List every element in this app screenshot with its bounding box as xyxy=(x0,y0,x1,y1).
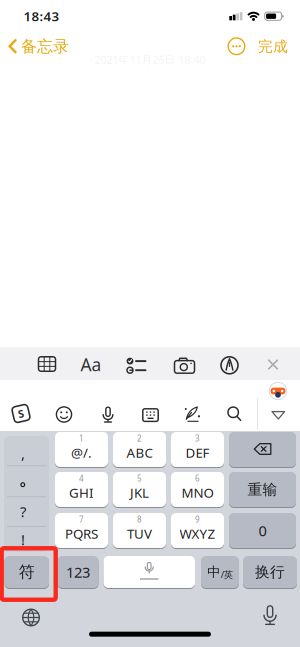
staticText: WXYZ xyxy=(179,525,215,542)
staticText: ! xyxy=(21,530,25,549)
button[interactable]: 听写 xyxy=(256,602,284,630)
staticText: 换行 xyxy=(255,563,285,581)
staticText: GHI xyxy=(69,484,94,501)
staticText: @/. xyxy=(71,444,92,461)
button[interactable]: 符 xyxy=(4,555,49,588)
staticText: 18:43 xyxy=(23,7,59,25)
staticText: S xyxy=(18,406,24,421)
staticText: 备忘录 xyxy=(21,37,69,56)
button[interactable]: 9 xyxy=(171,512,224,548)
button[interactable]: 中 xyxy=(201,555,239,588)
staticText: MNO xyxy=(181,484,213,501)
staticText: 0 xyxy=(258,521,266,540)
staticText: Aa xyxy=(80,353,101,376)
button[interactable]: 2 xyxy=(113,431,166,467)
staticText: 2021年11月25日 18:40 xyxy=(94,52,205,67)
button[interactable]: 手写 xyxy=(179,401,205,427)
staticText: ABC xyxy=(126,444,152,461)
button[interactable]: 3 xyxy=(171,431,224,467)
staticText: 8 xyxy=(137,514,142,525)
button[interactable]: 切换输入法 xyxy=(17,603,45,631)
staticText: 123 xyxy=(66,562,90,582)
button[interactable]: 表格 xyxy=(32,349,62,379)
button[interactable]: ？ xyxy=(4,496,49,526)
button[interactable]: 核对清单 xyxy=(121,350,151,380)
staticText: 5 xyxy=(137,473,142,484)
button[interactable]: 格式 xyxy=(76,349,106,379)
button[interactable]: 更多 xyxy=(225,35,248,58)
button[interactable]: 空格 xyxy=(103,555,195,588)
button[interactable]: 0 xyxy=(229,512,296,548)
staticText: , xyxy=(21,444,25,463)
button[interactable]: 备忘录 xyxy=(5,33,81,59)
staticText: 6 xyxy=(195,473,200,484)
button[interactable]: ！ xyxy=(4,526,49,552)
button[interactable]: 删除 xyxy=(229,431,296,467)
staticText: TUV xyxy=(127,525,152,542)
staticText: /英 xyxy=(221,568,233,581)
staticText: 9 xyxy=(195,514,200,525)
staticText: 符 xyxy=(19,562,35,582)
button[interactable]: 搜索 xyxy=(222,401,246,425)
staticText: 1 xyxy=(79,433,84,444)
button[interactable]: 完成 xyxy=(253,33,293,59)
button[interactable]: 1 xyxy=(55,431,108,467)
button[interactable]: ， xyxy=(4,436,49,465)
button[interactable]: 键盘 xyxy=(138,403,162,427)
staticText: 重输 xyxy=(247,480,277,498)
button[interactable]: 关闭 xyxy=(260,351,286,377)
staticText: 7 xyxy=(79,514,84,525)
button[interactable]: 收起键盘 xyxy=(266,405,290,425)
button[interactable]: 重输 xyxy=(229,471,296,507)
staticText: DEF xyxy=(185,444,209,461)
staticText: 完成 xyxy=(258,37,288,55)
button[interactable]: 5 xyxy=(113,471,166,507)
staticText: PQRS xyxy=(65,525,98,542)
button[interactable]: 8 xyxy=(113,512,166,548)
button[interactable]: 4 xyxy=(55,471,108,507)
button[interactable]: 表情包 xyxy=(268,381,288,401)
button[interactable]: 语音输入 xyxy=(96,402,120,426)
button[interactable]: 搜狗输入法 xyxy=(10,402,32,424)
staticText: 3 xyxy=(195,433,200,444)
button[interactable]: 。 xyxy=(4,466,49,496)
staticText: JKL xyxy=(130,484,149,501)
button[interactable]: 7 xyxy=(55,512,108,548)
button[interactable]: 换行 xyxy=(243,555,297,588)
button[interactable]: 标记 xyxy=(214,350,244,380)
staticText: ? xyxy=(20,502,26,521)
button[interactable]: 6 xyxy=(171,471,224,507)
staticText: 4 xyxy=(79,473,84,484)
button[interactable]: 123 xyxy=(57,555,98,588)
button[interactable]: 相机 xyxy=(169,349,199,379)
staticText: 2 xyxy=(137,433,142,444)
staticText: 中 xyxy=(207,564,220,580)
button[interactable]: 表情 xyxy=(52,402,76,426)
